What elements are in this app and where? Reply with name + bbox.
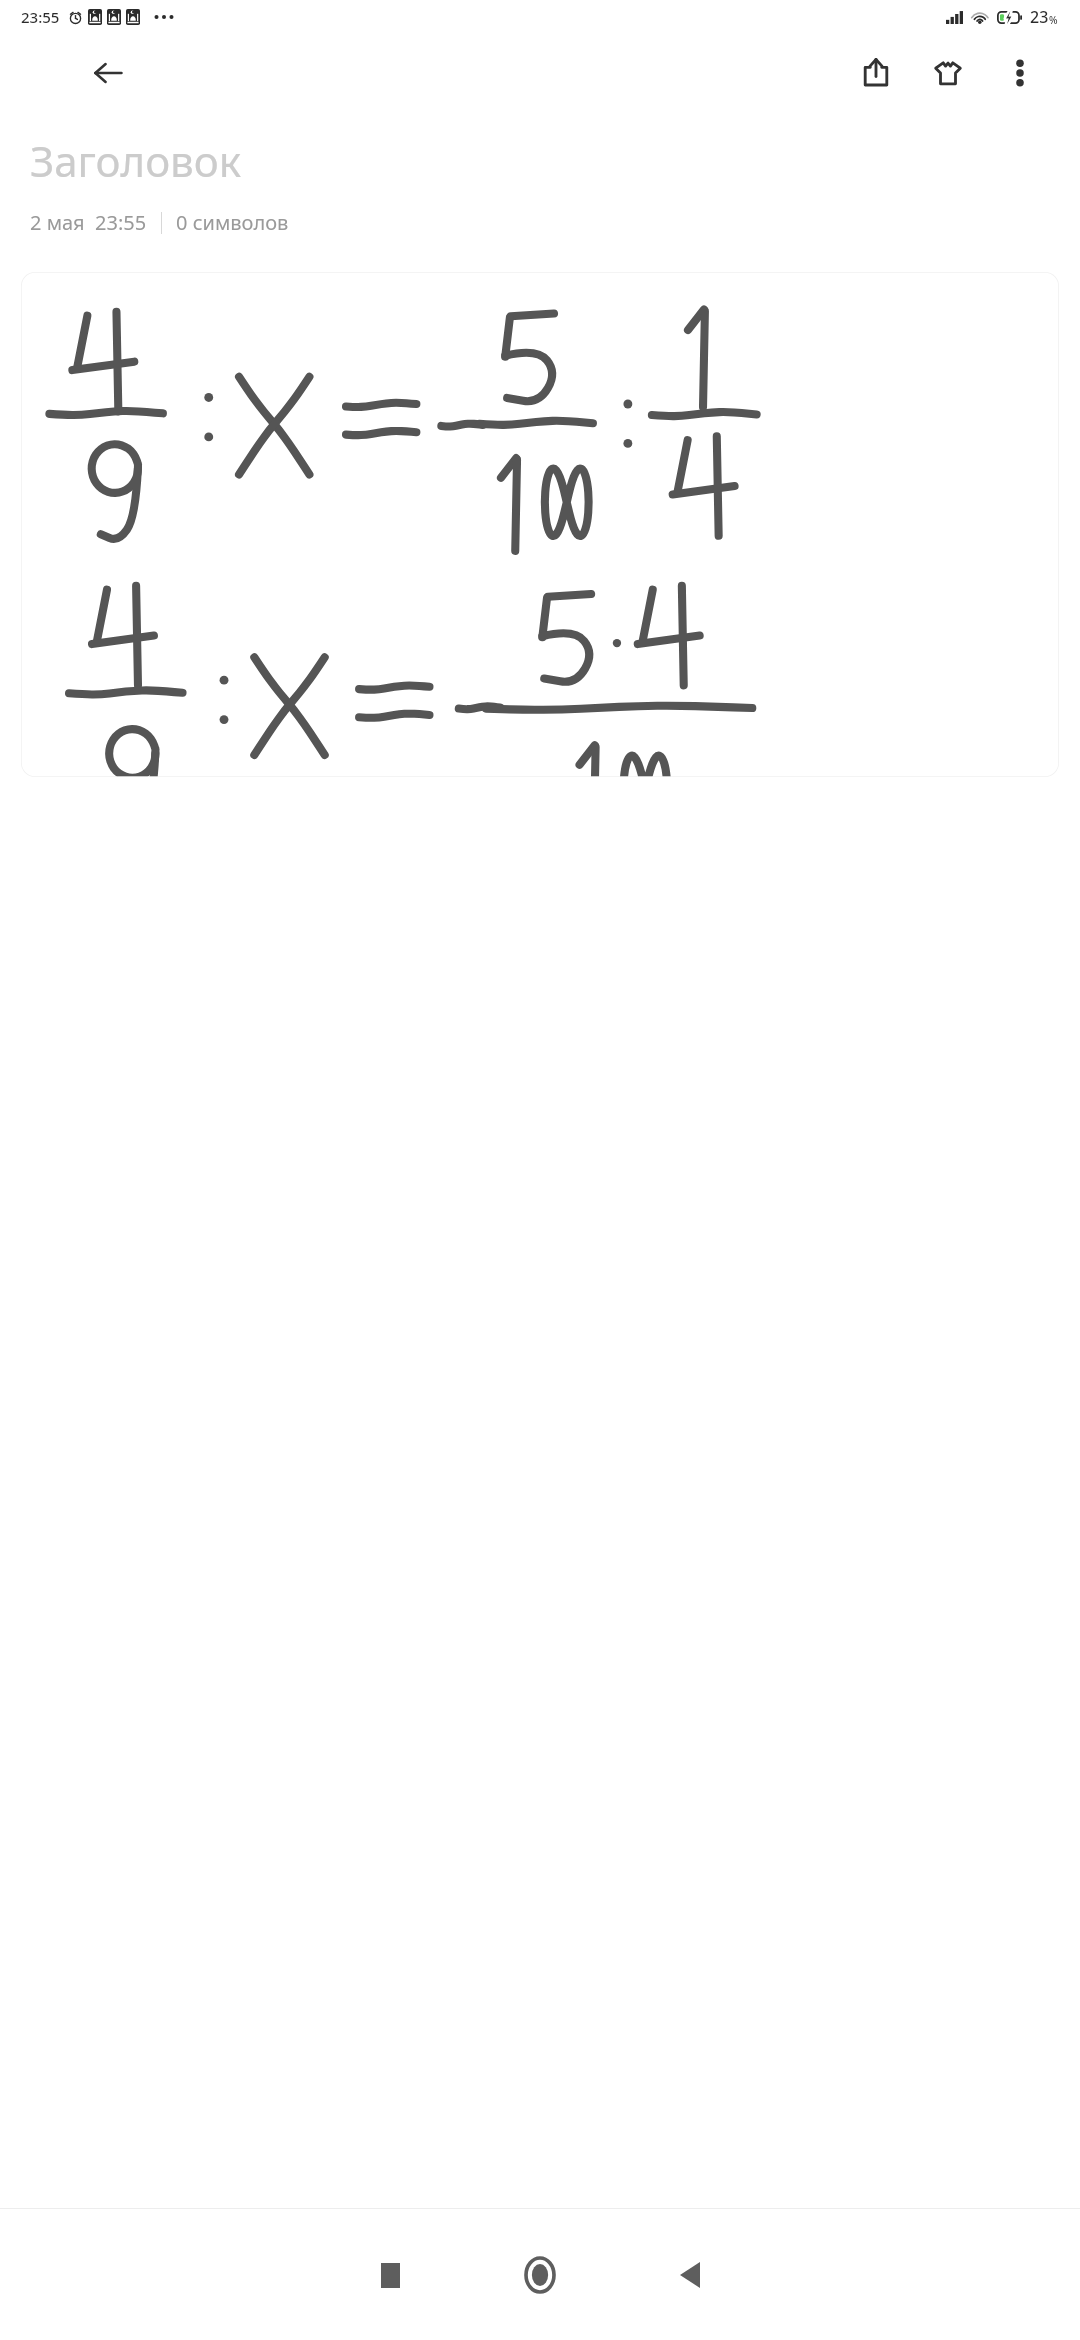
button[interactable]: Home (497, 2232, 583, 2318)
button[interactable]: More options (984, 37, 1056, 109)
staticText: Заголовок (30, 132, 242, 189)
button[interactable]: Back (647, 2232, 733, 2318)
button[interactable]: Recent apps (347, 2232, 433, 2318)
staticText: 23 (1030, 6, 1049, 28)
button[interactable] (21, 272, 1059, 777)
button[interactable]: Theme (912, 37, 984, 109)
staticText: % (1049, 13, 1058, 27)
staticText: 2 мая 23:55 (30, 209, 147, 236)
staticText: 23:55 (21, 7, 60, 27)
button[interactable]: Back (72, 37, 144, 109)
button[interactable]: Share (840, 37, 912, 109)
staticText: 0 символов (176, 209, 289, 236)
